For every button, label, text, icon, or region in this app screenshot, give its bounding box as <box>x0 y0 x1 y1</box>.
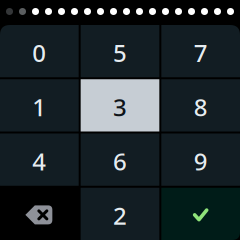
button[interactable]: 5 <box>81 25 159 77</box>
button[interactable]: 6 <box>81 133 159 186</box>
button[interactable]: 3 <box>81 79 159 131</box>
staticText: 8 <box>194 91 208 123</box>
button[interactable]: 0 <box>0 25 79 77</box>
staticText: 9 <box>194 145 208 177</box>
staticText: 2 <box>113 199 127 231</box>
staticText: 1 <box>32 91 46 123</box>
staticText: 3 <box>113 91 127 123</box>
button[interactable]: 8 <box>161 79 240 131</box>
staticText: 0 <box>32 37 46 69</box>
button[interactable]: 1 <box>0 79 79 131</box>
staticText: 4 <box>32 145 46 177</box>
button[interactable]: 2 <box>81 188 159 240</box>
staticText: 7 <box>194 37 208 69</box>
button[interactable]: Delete <box>0 188 79 240</box>
button[interactable]: Confirm <box>161 188 240 240</box>
button[interactable]: 9 <box>161 133 240 186</box>
staticText: 5 <box>113 37 127 69</box>
button[interactable]: 7 <box>161 25 240 77</box>
staticText: 6 <box>113 145 127 177</box>
button[interactable]: 4 <box>0 133 79 186</box>
